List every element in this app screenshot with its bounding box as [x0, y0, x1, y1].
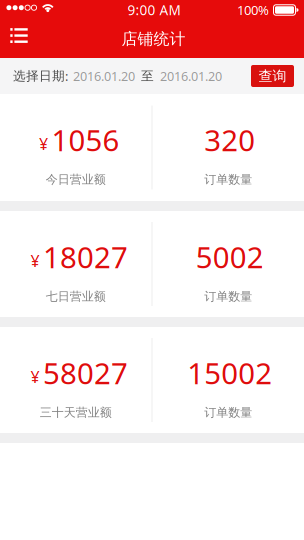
staticText: 2016.01.20 [73, 67, 135, 85]
staticText: 选择日期 [13, 68, 65, 84]
staticText: ¥ [30, 366, 39, 388]
staticText: 七日营业额 [46, 289, 106, 304]
staticText: 今日营业额 [46, 172, 106, 187]
staticText: 9:00 AM [127, 1, 180, 19]
staticText: 5002 [196, 237, 264, 277]
staticText: 店铺统计 [121, 29, 185, 49]
staticText: 15002 [187, 353, 272, 393]
staticText: 订单数量 [204, 289, 252, 304]
staticText: 至 [141, 68, 154, 84]
staticText: 58027 [43, 353, 128, 393]
staticText: : [65, 67, 68, 85]
staticText: ¥ [39, 133, 48, 155]
staticText: ¥ [30, 250, 39, 272]
button[interactable]: 查询 [251, 65, 294, 87]
button[interactable]: Menu [1, 20, 37, 58]
staticText: 18027 [43, 237, 128, 277]
staticText: 1056 [51, 120, 119, 160]
staticText: 订单数量 [204, 172, 252, 187]
staticText: 100% [237, 1, 269, 19]
staticText: 2016.01.20 [160, 67, 222, 85]
staticText: 三十天营业额 [40, 405, 112, 420]
staticText: 320 [204, 120, 255, 160]
staticText: 查询 [258, 67, 286, 85]
staticText: 订单数量 [204, 405, 252, 420]
